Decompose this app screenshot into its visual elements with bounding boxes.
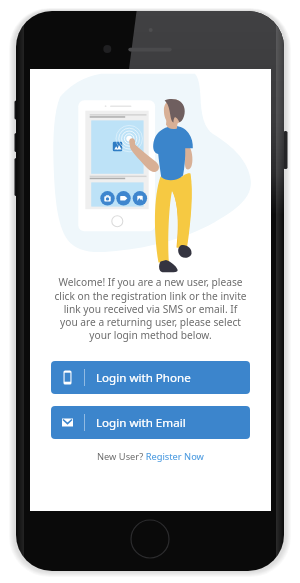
button[interactable]: New User? Register Now bbox=[97, 450, 204, 463]
staticText: Welcome! If you are a new user, please c… bbox=[54, 275, 247, 342]
staticText: Login with Email bbox=[96, 415, 186, 431]
button[interactable]: Login with Email bbox=[51, 406, 250, 439]
button[interactable]: Login with Phone bbox=[51, 361, 250, 394]
staticText: Login with Phone bbox=[96, 370, 191, 386]
